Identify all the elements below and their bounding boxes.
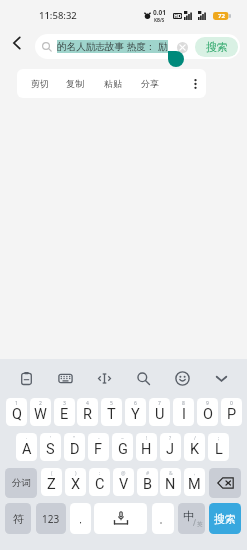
button[interactable]: Emoji [163,359,202,397]
button[interactable]: 6 [125,398,146,426]
staticText: HD [174,13,182,19]
staticText: 1 [15,400,18,407]
button[interactable]: 分词 [5,468,37,498]
staticText: 72 [218,12,225,20]
staticText: / [194,435,196,442]
button[interactable]: , [184,468,205,496]
staticText: S [46,441,55,458]
button[interactable]: 复制 [59,69,90,98]
staticText: ) [75,470,77,477]
staticText: I [182,406,186,423]
staticText: R [83,406,92,423]
button[interactable]: 剪切 [24,69,55,98]
staticText: ! [146,435,148,442]
staticText: A [22,441,32,458]
button[interactable]: 8 [173,398,194,426]
button[interactable]: 分享 [134,69,165,98]
staticText: 7 [158,400,161,407]
staticText: V [119,476,129,493]
staticText: J [166,441,175,458]
staticText: ， [76,514,85,525]
button[interactable]: 1 [6,398,27,426]
staticText: : [99,470,101,477]
button[interactable]: Backspace [209,468,241,498]
button[interactable]: Back [3,29,31,57]
button[interactable]: 7 [149,398,170,426]
staticText: X [71,476,81,493]
staticText: H [141,441,152,458]
button[interactable]: / [184,433,205,461]
staticText: ; [218,435,220,442]
staticText: L [215,441,223,458]
button[interactable]: Move cursor [85,359,124,397]
button[interactable]: ! [136,433,157,461]
button[interactable]: 粘贴 [97,69,128,98]
button[interactable]: @ [113,468,134,496]
button[interactable]: 9 [197,398,218,426]
button[interactable]: Search [124,359,163,397]
staticText: 4 [86,400,89,407]
staticText: ( [51,470,53,477]
button[interactable]: 4 [77,398,98,426]
button[interactable]: # [137,468,158,496]
staticText: # [146,470,150,477]
button[interactable]: 0 [221,398,242,426]
button[interactable]: Hide keyboard [202,359,241,397]
staticText: 8 [182,400,185,407]
staticText: D [70,441,80,458]
button[interactable]: & [160,468,181,496]
button[interactable]: ; [208,433,229,461]
button[interactable]: 3 [54,398,75,426]
button[interactable]: Clear text [174,39,190,55]
staticText: B [143,476,153,493]
button[interactable]: : [89,468,110,496]
staticText: O [203,406,213,423]
button[interactable]: 搜索 [209,503,241,534]
button[interactable]: 的名人励志故事 热度： 励 [35,34,240,59]
staticText: Z [47,476,56,493]
button[interactable]: 2 [30,398,51,426]
button[interactable]: ( [41,468,62,496]
staticText: & [169,470,173,477]
staticText: T [107,406,116,423]
staticText: P [227,406,237,423]
staticText: 搜索 [206,40,228,54]
staticText: W [34,406,47,423]
staticText: 0.01 [153,8,166,17]
staticText: , [194,470,196,477]
staticText: 0 [230,400,233,407]
button[interactable]: - [88,433,109,461]
staticText: ? [169,435,172,442]
button[interactable]: 符 [5,503,31,534]
staticText: 2 [39,400,42,407]
staticText: K [190,441,200,458]
button[interactable]: ) [65,468,86,496]
staticText: 搜索 [214,512,236,526]
button[interactable]: Space [94,503,147,534]
button[interactable]: · [16,433,37,461]
staticText: C [95,476,105,493]
button[interactable]: 。 [152,503,174,534]
button[interactable]: Keyboard layout [46,359,85,397]
staticText: 英 [197,521,203,528]
button[interactable]: ? [160,433,181,461]
staticText: 6 [134,400,137,407]
staticText: 粘贴 [104,78,122,89]
button[interactable]: 123 [36,503,66,534]
button[interactable]: ， [70,503,91,534]
button[interactable]: Clipboard [6,359,46,397]
button[interactable]: Switch Chinese English [178,503,205,534]
staticText: 3 [63,400,66,407]
button[interactable]: " [64,433,85,461]
staticText: · [26,435,28,442]
staticText: @ [121,470,126,477]
button[interactable]: 搜索 [195,37,238,57]
button[interactable]: 5 [101,398,122,426]
button[interactable]: ~ [112,433,133,461]
button[interactable]: More options [184,69,206,98]
staticText: 。 [159,514,168,525]
button[interactable]: ' [40,433,61,461]
staticText: ~ [121,435,124,442]
staticText: 分词 [12,477,31,489]
staticText: " [73,435,76,442]
